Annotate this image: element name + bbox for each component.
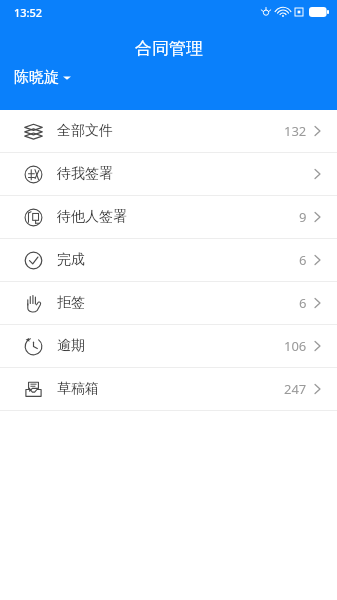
staticText: 草稿箱 xyxy=(57,380,99,398)
staticText: 247 xyxy=(284,380,307,398)
button[interactable]: 拒签 xyxy=(0,282,337,324)
staticText: 9 xyxy=(299,208,307,226)
staticText: 13:52 xyxy=(14,5,43,20)
staticText: 待我签署 xyxy=(57,165,113,183)
staticText: 陈晓旋 xyxy=(14,68,59,87)
staticText: 106 xyxy=(284,337,307,355)
staticText: 6 xyxy=(299,294,307,312)
staticText: 拒签 xyxy=(57,294,85,312)
staticText: 132 xyxy=(284,122,307,140)
button[interactable]: 待他人签署 xyxy=(0,196,337,238)
button[interactable]: 逾期 xyxy=(0,325,337,367)
button[interactable]: 陈晓旋 xyxy=(12,66,73,89)
button[interactable]: 全部文件 xyxy=(0,110,337,152)
staticText: 全部文件 xyxy=(57,122,113,140)
staticText: 待他人签署 xyxy=(57,208,127,226)
staticText: 6 xyxy=(299,251,307,269)
button[interactable]: 完成 xyxy=(0,239,337,281)
staticText: 合同管理 xyxy=(135,38,203,59)
button[interactable]: 待我签署 xyxy=(0,153,337,195)
staticText: 完成 xyxy=(57,251,85,269)
button[interactable]: 草稿箱 xyxy=(0,368,337,410)
staticText: 逾期 xyxy=(57,337,85,355)
